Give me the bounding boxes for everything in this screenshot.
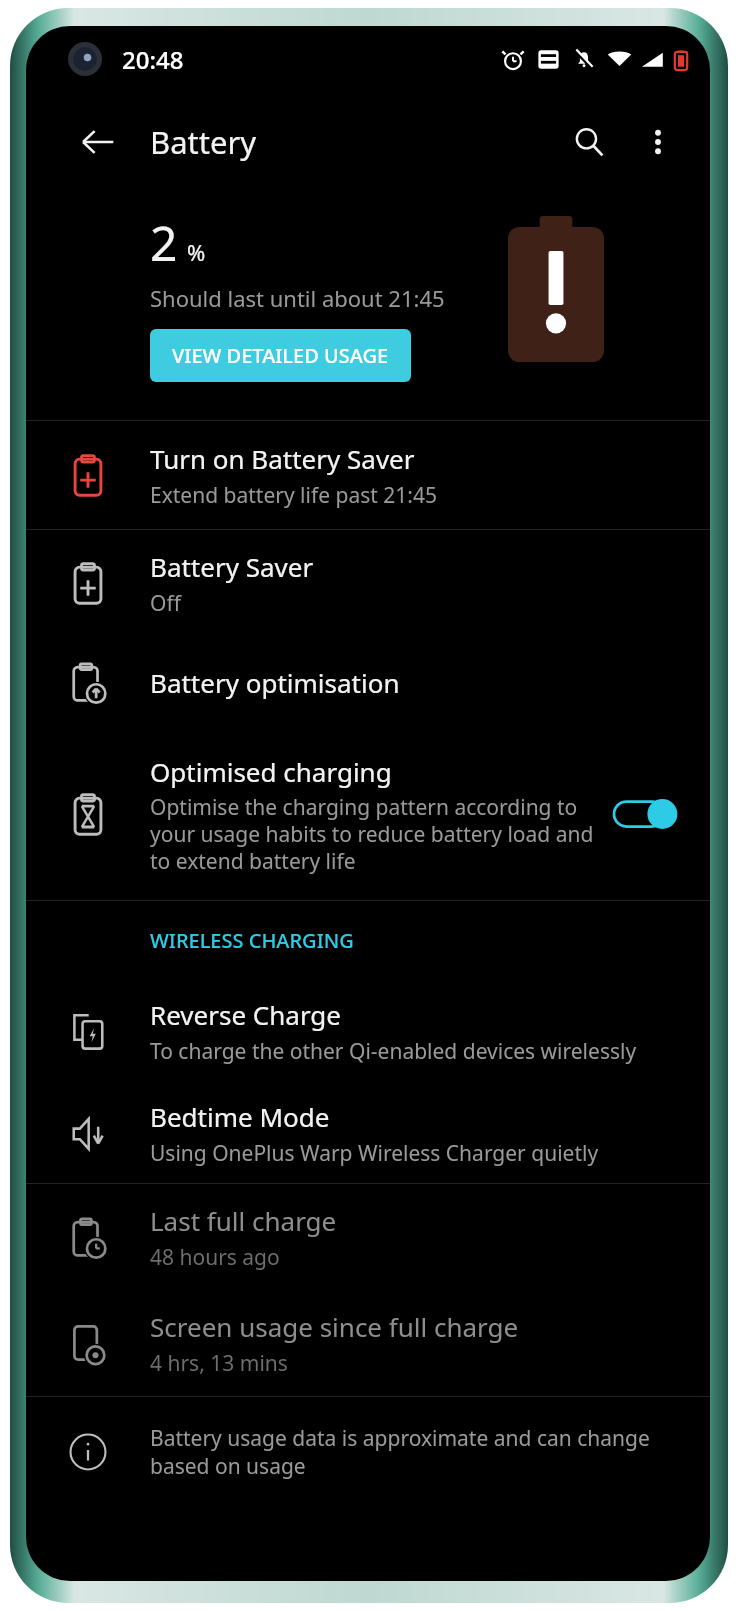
staticText: Battery — [150, 121, 257, 163]
button[interactable]: VIEW DETAILED USAGE — [150, 329, 411, 382]
staticText: Should last until about 21:45 — [150, 283, 445, 313]
staticText: 4 hrs, 13 mins — [150, 1349, 288, 1378]
staticText: To charge the other Qi-enabled devices w… — [150, 1037, 637, 1066]
staticText: Battery optimisation — [150, 665, 400, 700]
staticText: Battery usage data is approximate and ca… — [150, 1424, 670, 1480]
staticText: 48 hours ago — [150, 1243, 280, 1272]
button[interactable]: Optimised charging toggle — [614, 789, 684, 839]
button[interactable]: Screen usage since full charge — [26, 1290, 710, 1396]
button[interactable]: Battery optimisation — [26, 636, 710, 728]
staticText: % — [187, 237, 206, 267]
button[interactable]: Back — [64, 108, 132, 176]
staticText: Extend battery life past 21:45 — [150, 481, 437, 510]
button[interactable]: Battery Saver — [26, 530, 710, 636]
button[interactable]: Last full charge — [26, 1184, 710, 1290]
button[interactable]: Reverse Charge — [26, 979, 710, 1083]
staticText: Off — [150, 589, 181, 618]
staticText: Turn on Battery Saver — [150, 441, 415, 476]
staticText: 2 — [150, 210, 178, 275]
staticText: Last full charge — [150, 1203, 337, 1238]
staticText: VIEW DETAILED USAGE — [172, 342, 389, 369]
staticText: Optimised charging — [150, 754, 392, 789]
staticText: Reverse Charge — [150, 997, 342, 1032]
staticText: WIRELESS CHARGING — [150, 927, 354, 954]
button[interactable]: Bedtime Mode — [26, 1083, 710, 1183]
staticText: Using OnePlus Warp Wireless Charger quie… — [150, 1139, 599, 1168]
staticText: 20:48 — [122, 43, 184, 76]
staticText: Bedtime Mode — [150, 1099, 330, 1134]
button[interactable]: Turn on Battery Saver — [26, 421, 710, 529]
button[interactable]: Search — [556, 109, 622, 175]
button[interactable]: Optimised charging — [26, 728, 710, 900]
staticText: Battery Saver — [150, 549, 314, 584]
staticText: Optimise the charging pattern according … — [150, 793, 600, 875]
button[interactable]: More options — [626, 110, 690, 174]
staticText: Screen usage since full charge — [150, 1309, 519, 1344]
